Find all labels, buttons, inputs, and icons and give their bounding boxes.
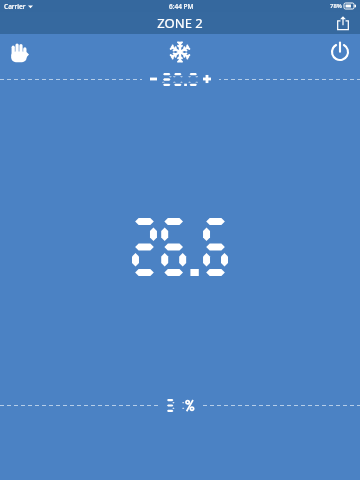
staticText: ZONE 2 xyxy=(157,14,203,32)
button[interactable]: Share xyxy=(332,12,354,34)
button[interactable]: Cooling mode xyxy=(164,36,196,68)
button[interactable]: Decrease setpoint xyxy=(148,70,159,88)
staticText: Carrier xyxy=(4,2,26,11)
button[interactable]: Power xyxy=(324,36,356,68)
staticText: 78% xyxy=(330,2,342,10)
staticText: 6:44 PM xyxy=(169,2,194,11)
button[interactable]: Increase setpoint xyxy=(201,70,213,88)
button[interactable]: Hold xyxy=(2,36,34,68)
